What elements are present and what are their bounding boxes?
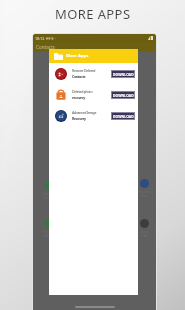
staticText: 18:12 (35, 36, 45, 41)
button[interactable]: Advanced Image (49, 105, 138, 126)
staticText: Backup Contacts (42, 192, 56, 200)
button[interactable]: DOWNLOAD (112, 92, 134, 98)
staticText: More Apps (66, 53, 89, 59)
staticText: Contacts (72, 74, 86, 79)
staticText: DOWNLOAD (113, 72, 134, 76)
staticText: Contacts (36, 44, 55, 50)
button[interactable]: Recover Deleted (49, 63, 138, 84)
button[interactable]: Deleted photo (49, 84, 138, 105)
button[interactable]: DOWNLOAD (112, 113, 134, 119)
staticText: DOWNLOAD (113, 93, 134, 97)
staticText: recovery (72, 95, 85, 100)
staticText: Recover Deleted (72, 68, 96, 73)
staticText: Advanced Image (72, 110, 97, 115)
button[interactable]: DOWNLOAD (112, 71, 134, 77)
staticText: Recovery (72, 116, 86, 121)
staticText: DOWNLOAD (113, 114, 134, 118)
staticText: Free up Phone (43, 230, 55, 238)
staticText: MORE APPS (55, 5, 131, 23)
staticText: Deleted photo (72, 89, 93, 94)
